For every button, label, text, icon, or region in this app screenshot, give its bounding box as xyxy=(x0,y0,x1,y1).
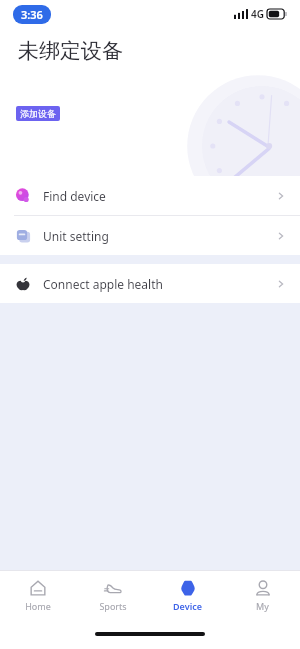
button[interactable]: Device xyxy=(150,571,225,619)
staticText: My xyxy=(256,600,269,612)
staticText: 添加设备 xyxy=(20,108,56,119)
button[interactable]: Connect apple health xyxy=(0,264,300,303)
staticText: Home xyxy=(25,600,51,612)
staticText: 未绑定设备 xyxy=(18,38,123,64)
staticText: Sports xyxy=(99,600,127,612)
button[interactable]: 添加设备 xyxy=(16,106,60,121)
button[interactable]: Home xyxy=(0,571,75,619)
button[interactable]: My xyxy=(225,571,300,619)
staticText: 4G xyxy=(251,7,264,21)
button[interactable]: Unit setting xyxy=(0,216,300,255)
button[interactable]: Sports xyxy=(75,571,150,619)
button[interactable]: Find device xyxy=(0,176,300,215)
staticText: Find device xyxy=(43,188,106,204)
staticText: Device xyxy=(173,600,202,612)
staticText: 3:36 xyxy=(21,7,43,22)
staticText: Unit setting xyxy=(43,228,109,244)
staticText: Connect apple health xyxy=(43,276,163,292)
